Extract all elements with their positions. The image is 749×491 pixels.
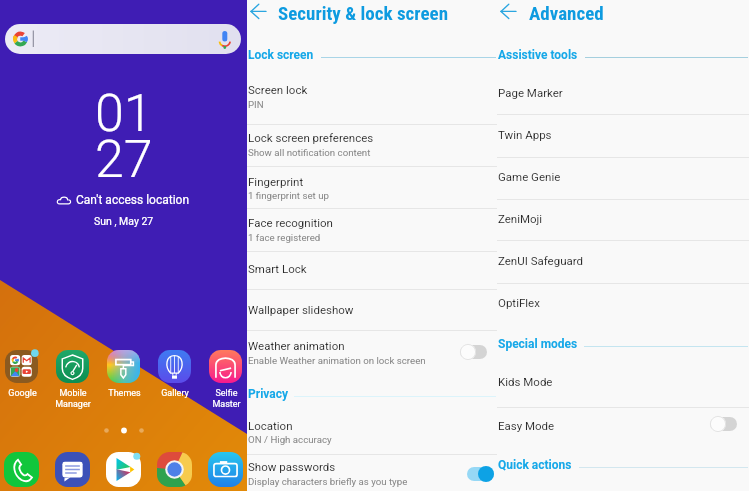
staticText: 27 (95, 129, 153, 190)
staticText: Game Genie (498, 170, 561, 183)
staticText: Easy Mode (498, 419, 555, 432)
button[interactable]: Play Store (106, 452, 141, 487)
button[interactable]: Gallery (150, 350, 200, 410)
button[interactable]: Selfie (201, 350, 251, 410)
staticText: Lock screen (248, 48, 314, 62)
staticText: Location (248, 419, 293, 432)
button[interactable] (247, 167, 497, 208)
button[interactable]: Camera (208, 452, 243, 487)
button[interactable] (497, 360, 749, 401)
staticText: Display characters briefly as you type (248, 476, 408, 487)
staticText: Enable Weather animation on lock screen (248, 355, 426, 366)
staticText: ZeniMoji (498, 212, 543, 225)
staticText: Can't access location (76, 193, 190, 207)
staticText: Gallery (161, 388, 189, 399)
button[interactable]: Navigate up (246, 0, 272, 26)
staticText: Selfie (215, 388, 238, 399)
button[interactable]: Mobile (48, 350, 98, 410)
button[interactable] (497, 284, 749, 322)
staticText: Themes (108, 388, 141, 399)
staticText: Wallpaper slideshow (248, 303, 354, 316)
button[interactable] (497, 158, 749, 199)
staticText: Quick actions (498, 458, 572, 472)
button[interactable] (497, 241, 749, 283)
staticText: Twin Apps (498, 128, 552, 141)
button[interactable]: Google search (5, 24, 241, 54)
button[interactable] (247, 67, 497, 124)
staticText: Screen lock (248, 83, 308, 96)
staticText: ZenUI Safeguard (498, 254, 584, 267)
staticText: Weather animation (248, 339, 345, 352)
button[interactable] (497, 115, 749, 157)
staticText: Kids Mode (498, 375, 553, 388)
staticText: Security & lock screen (278, 2, 448, 24)
button[interactable] (247, 125, 497, 166)
staticText: Show passwords (248, 460, 336, 473)
staticText: Mobile (59, 388, 87, 399)
staticText: Master (212, 399, 241, 410)
staticText: Fingerprint (248, 175, 304, 188)
button[interactable] (497, 408, 749, 450)
button[interactable]: Phone (4, 452, 39, 487)
button[interactable] (247, 410, 497, 454)
staticText: Manager (55, 399, 91, 410)
staticText: ON / High accuracy (248, 434, 332, 445)
staticText: Lock screen preferences (248, 131, 374, 144)
button[interactable] (247, 290, 497, 331)
button[interactable]: Toggle off (456, 341, 490, 363)
button[interactable] (247, 209, 497, 251)
staticText: Google (8, 388, 37, 399)
button[interactable]: Messages (55, 452, 90, 487)
staticText: Advanced (529, 2, 604, 24)
staticText: PIN (248, 99, 264, 110)
staticText: Assistive tools (498, 48, 578, 62)
button[interactable]: Google (0, 350, 47, 410)
button[interactable]: Navigate up (496, 0, 522, 26)
button[interactable]: Toggle on (463, 463, 497, 485)
staticText: 01 (95, 83, 153, 144)
button[interactable]: Toggle off (706, 413, 740, 435)
staticText: Privacy (248, 387, 289, 401)
button[interactable]: Themes (99, 350, 149, 410)
staticText: Show all notification content (248, 147, 371, 158)
staticText: Sun , May 27 (94, 215, 154, 227)
button[interactable] (497, 72, 749, 114)
staticText: 1 fingerprint set up (248, 190, 329, 201)
staticText: Special modes (498, 337, 578, 351)
staticText: Face recognition (248, 216, 333, 229)
staticText: Page Marker (498, 86, 563, 99)
staticText: OptiFlex (498, 296, 540, 309)
button[interactable] (247, 252, 497, 290)
button[interactable] (247, 331, 497, 381)
button[interactable]: Chrome (157, 452, 192, 487)
button[interactable] (247, 455, 497, 491)
button[interactable] (497, 200, 749, 240)
staticText: 1 face registered (248, 232, 321, 243)
staticText: Smart Lock (248, 262, 307, 275)
